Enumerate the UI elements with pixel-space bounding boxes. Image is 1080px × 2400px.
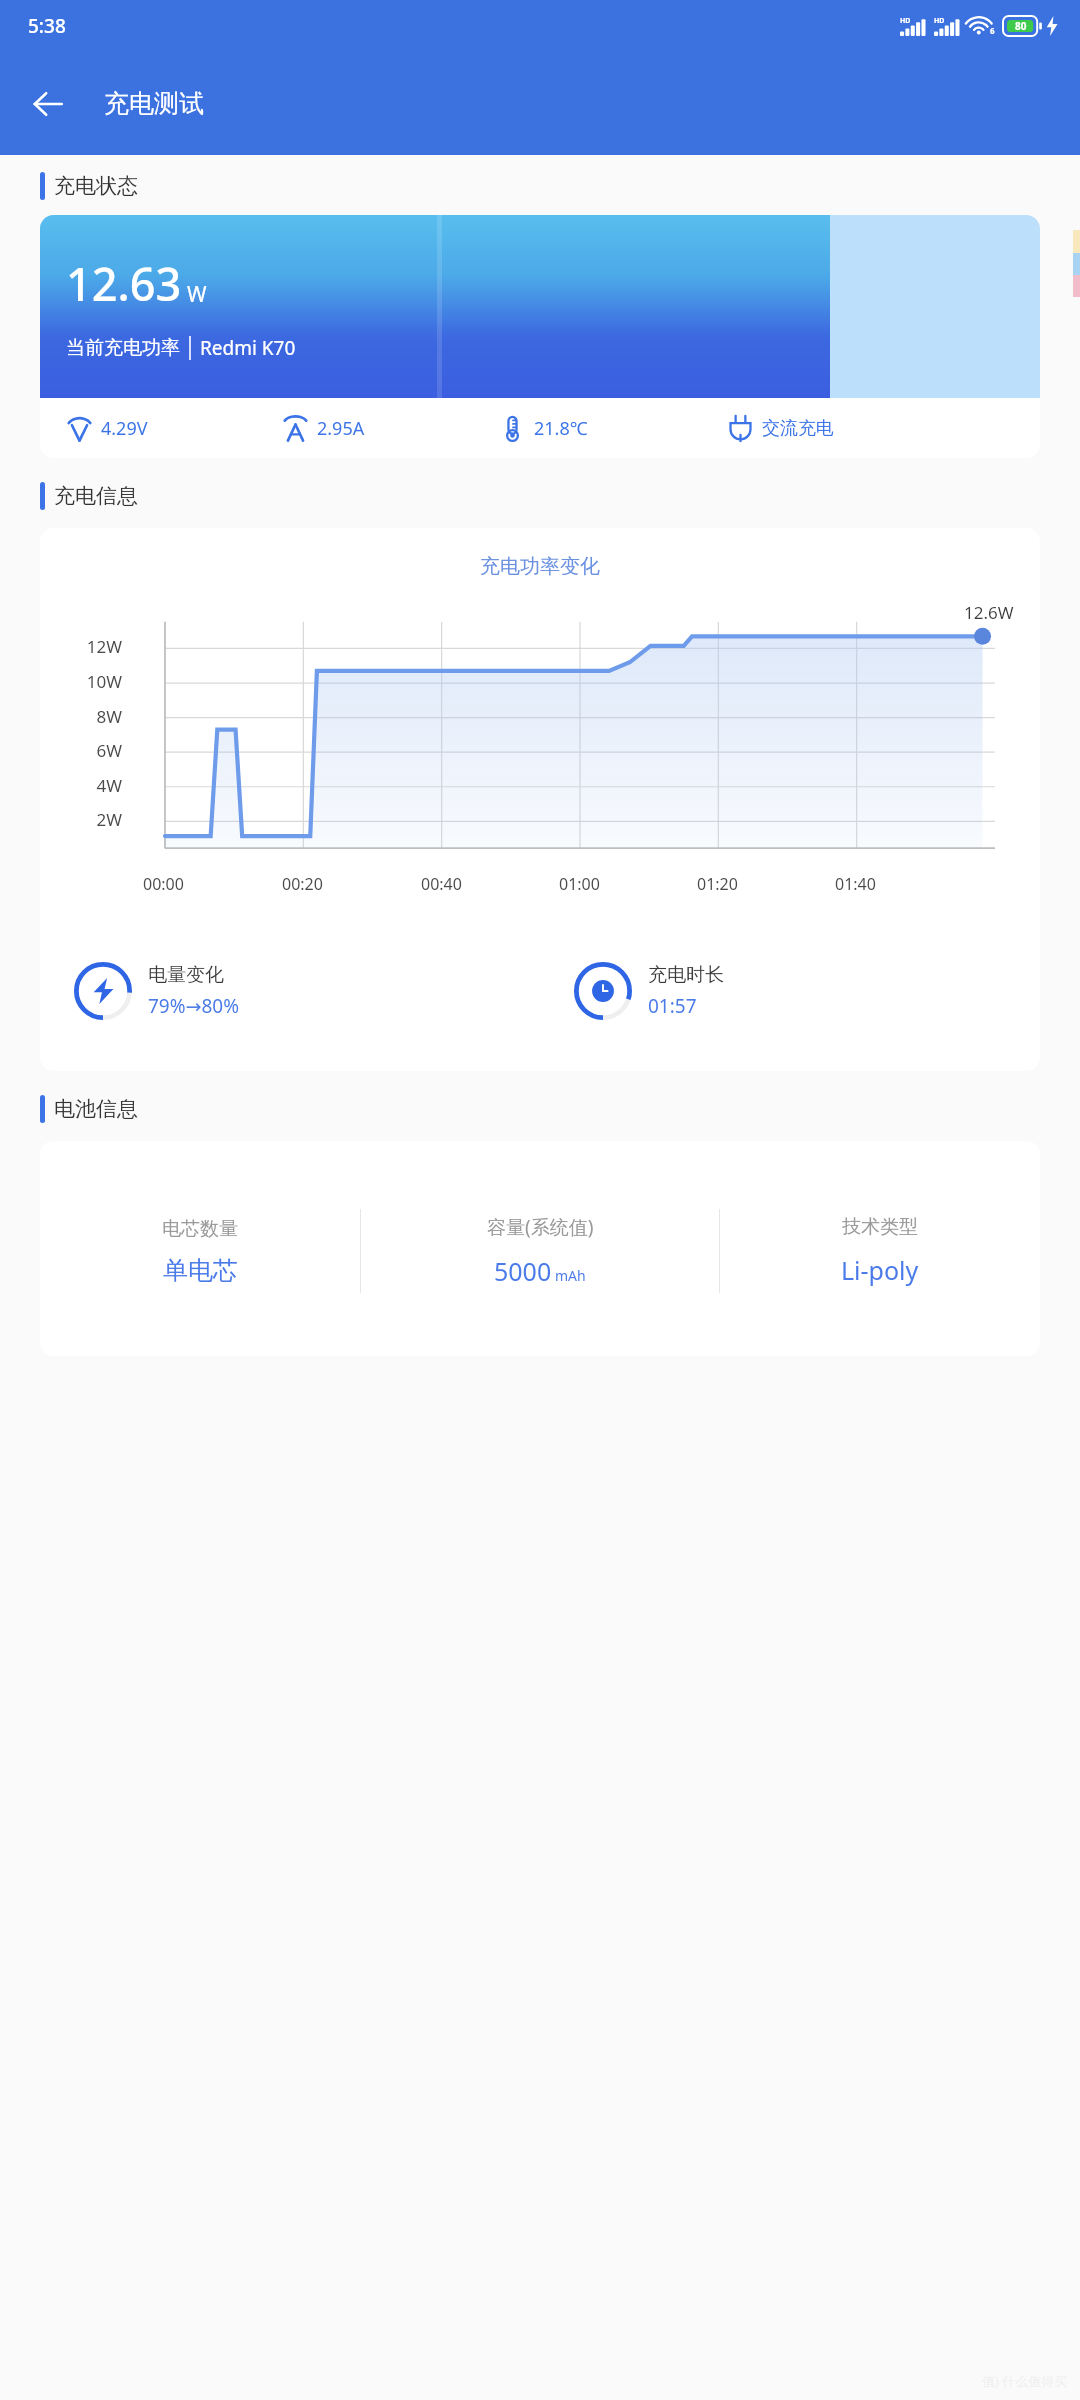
staticText: 01:57 — [648, 993, 697, 1019]
staticText: 6 — [990, 25, 995, 36]
staticText: 当前充电功率 — [66, 336, 180, 360]
staticText: 充电状态 — [54, 173, 138, 199]
staticText: 单电芯 — [163, 1255, 238, 1286]
staticText: 电芯数量 — [162, 1217, 238, 1241]
staticText: 值) 什么值得买 — [982, 2372, 1068, 2390]
staticText: 12W — [40, 635, 122, 658]
staticText: 充电信息 — [54, 483, 138, 509]
staticText: 4W — [40, 774, 122, 797]
button[interactable]: 电量变化 — [74, 911, 540, 1071]
staticText: 12.63 — [66, 253, 182, 314]
staticText: 10W — [40, 670, 122, 693]
staticText: 电量变化 — [148, 963, 224, 987]
staticText: 21.8℃ — [534, 416, 588, 441]
staticText: 00:40 — [421, 873, 462, 895]
button[interactable]: 12.63 — [40, 215, 1040, 458]
staticText: 80 — [1015, 19, 1027, 33]
staticText: 01:00 — [559, 873, 600, 895]
button[interactable]: 电芯数量 — [40, 1141, 1040, 1356]
button[interactable]: Back — [20, 76, 76, 132]
staticText: 容量(系统值) — [487, 1214, 594, 1240]
staticText: HD — [934, 16, 945, 26]
button[interactable]: 容量(系统值) — [361, 1214, 719, 1288]
staticText: 79%→80% — [148, 993, 239, 1019]
button[interactable]: 交流充电 — [727, 398, 1020, 458]
staticText: W — [187, 280, 207, 309]
staticText: 电池信息 — [54, 1096, 138, 1122]
staticText: 12.6W — [964, 601, 1014, 624]
staticText: 2.95A — [317, 416, 365, 441]
button[interactable]: 电芯数量 — [40, 1217, 360, 1286]
button[interactable]: 4.29V — [66, 398, 282, 458]
staticText: Li-poly — [841, 1253, 919, 1287]
staticText: mAh — [555, 1266, 586, 1285]
staticText: 01:20 — [697, 873, 738, 895]
staticText: 交流充电 — [762, 417, 834, 440]
staticText: 5000 — [494, 1254, 552, 1288]
staticText: 01:40 — [835, 873, 876, 895]
button[interactable]: 技术类型 — [720, 1215, 1040, 1287]
staticText: 00:00 — [143, 873, 184, 895]
staticText: 00:20 — [282, 873, 323, 895]
staticText: 2W — [40, 808, 122, 831]
staticText: 充电测试 — [104, 88, 204, 119]
staticText: 8W — [40, 705, 122, 728]
button[interactable]: 充电时长 — [574, 911, 1040, 1071]
staticText: Redmi K70 — [200, 335, 296, 361]
staticText: 技术类型 — [842, 1215, 918, 1239]
staticText: 6W — [40, 739, 122, 762]
staticText: 充电时长 — [648, 963, 724, 987]
staticText: 4.29V — [101, 416, 148, 441]
button[interactable]: 充电功率变化 — [40, 528, 1040, 1071]
staticText: HD — [900, 16, 911, 26]
staticText: 5:38 — [28, 13, 66, 39]
button[interactable]: 21.8℃ — [499, 398, 727, 458]
button[interactable]: 2.95A — [282, 398, 499, 458]
staticText: 充电功率变化 — [40, 554, 1040, 579]
